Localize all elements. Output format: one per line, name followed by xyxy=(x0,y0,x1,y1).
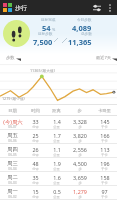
button[interactable]: More options xyxy=(103,1,116,14)
staticText: 步 xyxy=(78,195,82,199)
staticText: 公里 xyxy=(53,181,60,185)
staticText: 卡路里 xyxy=(92,108,117,113)
staticText: 千卡 xyxy=(101,139,108,143)
staticText: 15 xyxy=(32,188,39,195)
staticText: 4,089 xyxy=(72,23,92,33)
staticText: 分钟 xyxy=(32,195,39,199)
button[interactable]: Settings xyxy=(90,1,103,14)
staticText: 步 xyxy=(78,125,82,129)
staticText: 11,365 xyxy=(68,37,92,47)
staticText: 步 xyxy=(67,108,92,113)
staticText: 166 xyxy=(100,132,110,139)
staticText: 26 xyxy=(32,146,39,153)
staticText: 千卡 xyxy=(101,195,108,199)
staticText: 3,328 xyxy=(73,118,87,125)
staticText: 步行 xyxy=(15,4,27,12)
button[interactable]: (今)周六 xyxy=(0,116,117,130)
staticText: 35 xyxy=(32,174,39,181)
staticText: 1.1 xyxy=(53,146,61,153)
staticText: 千卡 xyxy=(101,125,108,129)
staticText: 公里 xyxy=(53,195,60,199)
staticText: 日期 xyxy=(0,108,25,113)
staticText: 3,659 xyxy=(73,174,87,181)
staticText: 3,820 xyxy=(73,132,87,139)
button[interactable]: Edit total xyxy=(62,38,67,43)
button[interactable]: 步数 xyxy=(5,54,22,61)
staticText: 周二 xyxy=(7,174,18,181)
button[interactable]: 周五 xyxy=(0,130,117,144)
staticText: 1.9 xyxy=(53,160,61,167)
staticText: 1.7 xyxy=(53,132,61,139)
staticText: 4,500 xyxy=(73,160,87,167)
staticText: 距离 xyxy=(46,108,67,113)
staticText: 公里 xyxy=(53,125,60,129)
staticText: 目标完成 xyxy=(41,18,56,23)
staticText: 周一 xyxy=(7,188,18,195)
button[interactable]: Edit goal xyxy=(54,38,58,42)
staticText: 总步数 xyxy=(81,32,92,37)
staticText: 千卡 xyxy=(101,153,108,157)
staticText: 97 xyxy=(101,188,108,195)
staticText: 06-06 xyxy=(8,139,17,143)
staticText: 分钟 xyxy=(32,167,39,171)
staticText: 周三 xyxy=(7,160,18,167)
staticText: 06-02 xyxy=(8,195,17,199)
staticText: 今日步数 xyxy=(77,18,92,23)
staticText: 步 xyxy=(78,167,82,171)
staticText: 千卡 xyxy=(101,181,108,185)
staticText: 06-04 xyxy=(8,167,17,171)
staticText: 目标步数 xyxy=(38,32,53,37)
staticText: 113 xyxy=(100,146,110,153)
staticText: 公里 xyxy=(53,167,60,171)
staticText: 步 xyxy=(78,139,82,143)
staticText: % xyxy=(52,27,56,32)
staticText: 步 xyxy=(78,153,82,157)
staticText: 最近7天 xyxy=(96,55,111,61)
staticText: 158 xyxy=(100,174,110,181)
staticText: 25 xyxy=(32,132,39,139)
staticText: 分钟 xyxy=(32,153,39,157)
staticText: 分钟 xyxy=(32,125,39,129)
button[interactable]: 周三 xyxy=(0,158,117,172)
button[interactable]: 周一 xyxy=(0,186,117,200)
button[interactable]: Steps xyxy=(3,20,30,47)
staticText: 48 xyxy=(32,160,39,167)
staticText: 公里 xyxy=(53,139,60,143)
staticText: 周五 xyxy=(7,132,18,139)
staticText: 分钟 xyxy=(32,181,39,185)
staticText: 步数 xyxy=(6,55,15,60)
staticText: 2,556 xyxy=(73,146,87,153)
staticText: 1,279 xyxy=(73,188,87,195)
staticText: 千卡 xyxy=(101,167,108,171)
button[interactable]: 最近7天 xyxy=(95,54,117,62)
staticText: 33 xyxy=(32,118,39,125)
staticText: 步 xyxy=(78,181,82,185)
staticText: 11365 (最大值) xyxy=(30,68,55,73)
staticText: 7,500 xyxy=(33,37,53,47)
button[interactable]: 周二 xyxy=(0,172,117,186)
staticText: (今)周六 xyxy=(3,118,23,125)
staticText: 196 xyxy=(100,160,110,167)
staticText: 时间 xyxy=(25,108,46,113)
staticText: 06-07 xyxy=(8,125,17,129)
staticText: 分钟 xyxy=(32,139,39,143)
staticText: 06-03 xyxy=(8,181,17,185)
staticText: 公里 xyxy=(53,153,60,157)
staticText: 06-05 xyxy=(8,153,17,157)
staticText: 145 xyxy=(100,118,110,125)
staticText: 1.4 xyxy=(53,118,61,125)
staticText: 周四 xyxy=(7,146,18,153)
staticText: 54 xyxy=(42,23,51,33)
staticText: 0.5 xyxy=(53,188,61,195)
staticText: 1.6 xyxy=(53,174,61,181)
button[interactable]: 周四 xyxy=(0,144,117,158)
staticText: 1279 (最小值) xyxy=(2,96,25,101)
